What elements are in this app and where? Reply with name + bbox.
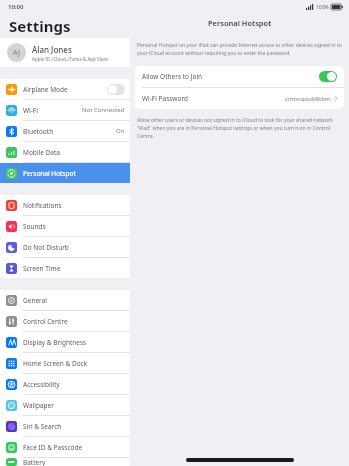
staticText: Settings (9, 16, 71, 36)
button[interactable]: Toggle off (107, 84, 125, 95)
button[interactable]: Airplane Mode (0, 79, 130, 99)
button[interactable]: Display & Brightness (0, 332, 130, 352)
staticText: Face ID & Passcode (23, 443, 83, 452)
staticText: Notifications (23, 201, 62, 210)
button[interactable]: Sounds (0, 216, 130, 236)
staticText: Do Not Disturb (23, 243, 69, 252)
staticText: Personal Hotspot (23, 169, 76, 178)
staticText: cmixcqoob8tbm (285, 95, 331, 103)
staticText: Alan Jones (32, 44, 72, 55)
button[interactable]: Screen Time (0, 258, 130, 278)
staticText: 100% (316, 4, 329, 11)
button[interactable]: Control Centre (0, 311, 130, 331)
button[interactable]: AJ (0, 38, 130, 67)
staticText: Sounds (23, 222, 46, 231)
staticText: Mobile Data (23, 148, 60, 157)
staticText: Display & Brightness (23, 338, 87, 347)
staticText: AJ (13, 48, 20, 58)
staticText: Control Centre (23, 317, 68, 326)
staticText: Allow other users or devices not signed … (137, 117, 342, 140)
button[interactable]: Home Screen & Dock (0, 353, 130, 373)
staticText: General (23, 296, 47, 305)
staticText: Wallpaper (23, 401, 54, 410)
staticText: Not Connected (82, 106, 125, 114)
staticText: Personal Hotspot on your iPad can provid… (137, 42, 342, 57)
staticText: Home Screen & Dock (23, 359, 88, 368)
staticText: Wi-Fi (23, 106, 38, 115)
staticText: Apple ID, iCloud, iTunes & App Store (32, 56, 109, 62)
staticText: On (116, 127, 125, 135)
button[interactable]: Bluetooth (0, 121, 130, 141)
staticText: Accessibility (23, 380, 60, 389)
staticText: Allow Others to Join (142, 72, 203, 81)
button[interactable]: Siri & Search (0, 416, 130, 436)
button[interactable]: Do Not Disturb (0, 237, 130, 257)
staticText: Personal Hotspot (208, 18, 272, 28)
button[interactable]: General (0, 290, 130, 310)
staticText: Wi-Fi Password (142, 94, 188, 103)
button[interactable]: Wi-Fi (0, 100, 130, 120)
button[interactable]: Wi-Fi Password (135, 88, 344, 109)
staticText: 10:00 (8, 3, 24, 11)
staticText: Screen Time (23, 264, 61, 273)
button[interactable]: Allow Others to Join (135, 66, 344, 87)
button[interactable]: Accessibility (0, 374, 130, 394)
button[interactable]: Personal Hotspot (0, 163, 130, 183)
staticText: Airplane Mode (23, 85, 68, 94)
button[interactable]: Mobile Data (0, 142, 130, 162)
staticText: Siri & Search (23, 422, 62, 431)
button[interactable]: Notifications (0, 195, 130, 215)
button[interactable]: Toggle on (319, 71, 337, 82)
staticText: Bluetooth (23, 127, 54, 136)
button[interactable]: Wallpaper (0, 395, 130, 415)
button[interactable]: Battery (0, 458, 130, 466)
staticText: Battery (23, 458, 46, 466)
button[interactable]: Face ID & Passcode (0, 437, 130, 457)
